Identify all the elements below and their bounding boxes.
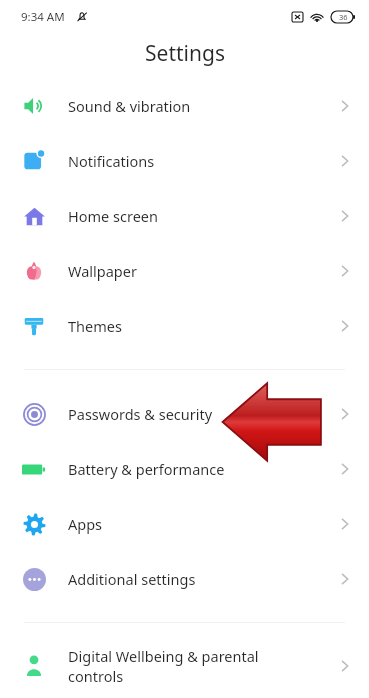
staticText: controls xyxy=(68,666,124,686)
staticText: Wallpaper xyxy=(68,261,137,281)
staticText: Digital Wellbeing & parental xyxy=(68,646,259,666)
button[interactable]: Apps xyxy=(0,496,369,551)
staticText: Themes xyxy=(68,316,122,336)
staticText: Additional settings xyxy=(68,569,196,589)
staticText: Notifications xyxy=(68,151,155,171)
button[interactable]: Notifications xyxy=(0,133,369,188)
staticText: 9:34 AM xyxy=(21,9,65,25)
staticText: Home screen xyxy=(68,206,158,226)
button[interactable]: Passwords & security xyxy=(0,386,369,441)
button[interactable]: Sound & vibration xyxy=(0,78,369,133)
staticText: Sound & vibration xyxy=(68,96,191,116)
button[interactable]: Digital Wellbeing & parental xyxy=(0,637,369,695)
button[interactable]: Additional settings xyxy=(0,551,369,606)
button[interactable]: Wallpaper xyxy=(0,243,369,298)
staticText: 36 xyxy=(339,12,348,22)
staticText: Passwords & security xyxy=(68,404,213,424)
button[interactable]: Themes xyxy=(0,298,369,353)
staticText: Settings xyxy=(145,39,225,68)
button[interactable]: Battery & performance xyxy=(0,441,369,496)
staticText: Battery & performance xyxy=(68,459,225,479)
button[interactable]: Home screen xyxy=(0,188,369,243)
staticText: Apps xyxy=(68,514,103,534)
